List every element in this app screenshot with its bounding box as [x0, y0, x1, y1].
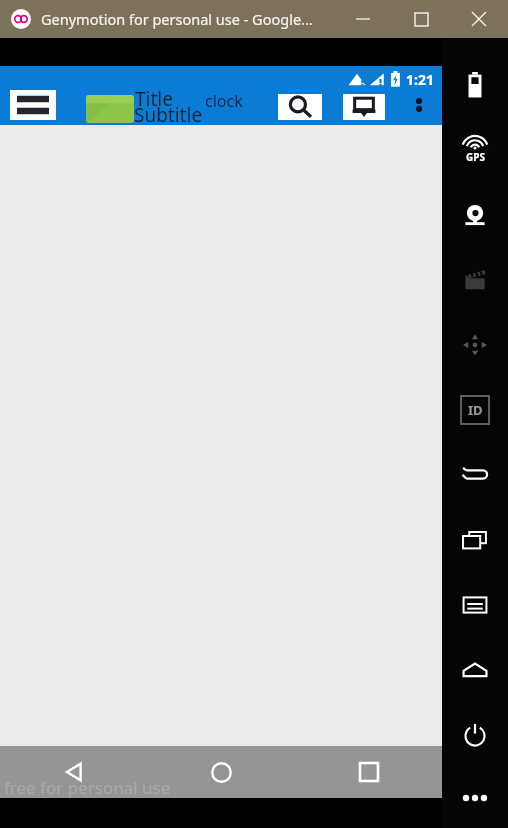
staticText: 1:21 — [406, 70, 434, 89]
button[interactable]: Battery — [442, 52, 508, 117]
staticText: clock — [205, 90, 243, 112]
button[interactable]: Camera — [442, 182, 508, 247]
button[interactable]: Power — [442, 702, 508, 767]
staticText: Subtitle — [134, 102, 203, 128]
button[interactable]: Screen recorder — [442, 247, 508, 312]
button[interactable]: Recent apps — [442, 507, 508, 572]
button[interactable]: Recent apps — [295, 746, 442, 798]
staticText: Genymotion for personal use - Google... — [41, 9, 313, 29]
button[interactable]: Back — [442, 442, 508, 507]
button[interactable]: Cast to screen — [343, 94, 385, 120]
button[interactable]: App logo — [86, 95, 134, 123]
button[interactable]: Navigation drawer — [10, 90, 56, 120]
staticText: GPS — [466, 150, 485, 164]
button[interactable]: Identifiers — [442, 377, 508, 442]
button[interactable]: close — [450, 0, 508, 38]
button[interactable]: Accelerometer — [442, 312, 508, 377]
button[interactable]: Search — [278, 94, 322, 120]
button[interactable]: Back — [0, 746, 148, 798]
button[interactable]: GPS — [442, 117, 508, 182]
button[interactable]: Home — [148, 746, 295, 798]
button[interactable]: Home — [442, 637, 508, 702]
staticText: ID — [468, 401, 483, 419]
staticText: free for personal use — [4, 776, 171, 799]
button[interactable]: Menu — [442, 572, 508, 637]
button[interactable]: max — [392, 0, 450, 38]
button[interactable]: More options — [408, 92, 432, 122]
staticText: Title — [135, 86, 173, 112]
button[interactable]: min — [334, 0, 392, 38]
button[interactable]: More — [442, 767, 508, 828]
